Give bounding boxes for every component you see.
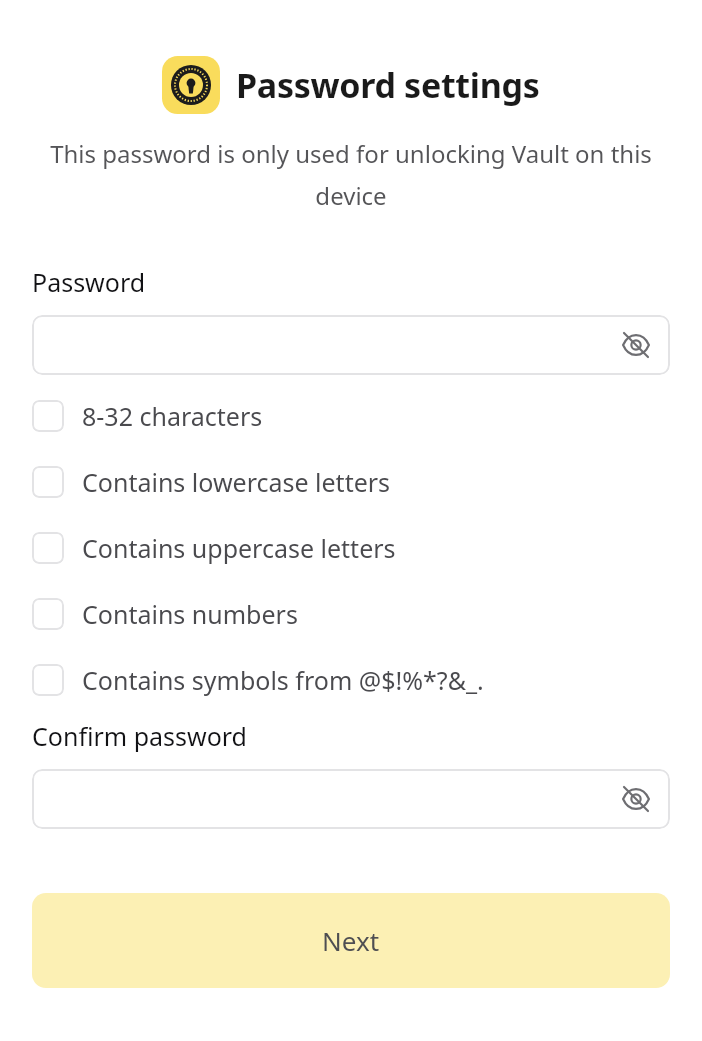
staticText: Contains numbers [82,597,298,631]
staticText: Contains symbols from @$!%*?&_. [82,663,484,697]
button[interactable]: Contains symbols from @$!%*?&_. [32,663,670,697]
button[interactable]: Next [32,893,670,988]
staticText: Next [322,923,380,958]
button[interactable]: Contains uppercase letters [32,531,670,565]
staticText: Contains lowercase letters [82,465,391,499]
button[interactable]: Show password [618,327,654,363]
button[interactable]: Contains lowercase letters [32,465,670,499]
button[interactable]: 8-32 characters [32,399,670,433]
staticText: Confirm password [32,719,247,753]
staticText: Password [32,265,146,299]
staticText: Contains uppercase letters [82,531,396,565]
staticText: Password settings [236,62,540,108]
button[interactable]: Show password [32,315,670,375]
staticText: 8-32 characters [82,399,263,433]
button[interactable]: Contains numbers [32,597,670,631]
button[interactable]: Show password [618,781,654,817]
staticText: This password is only used for unlocking… [30,137,672,212]
button[interactable]: Show password [32,769,670,829]
